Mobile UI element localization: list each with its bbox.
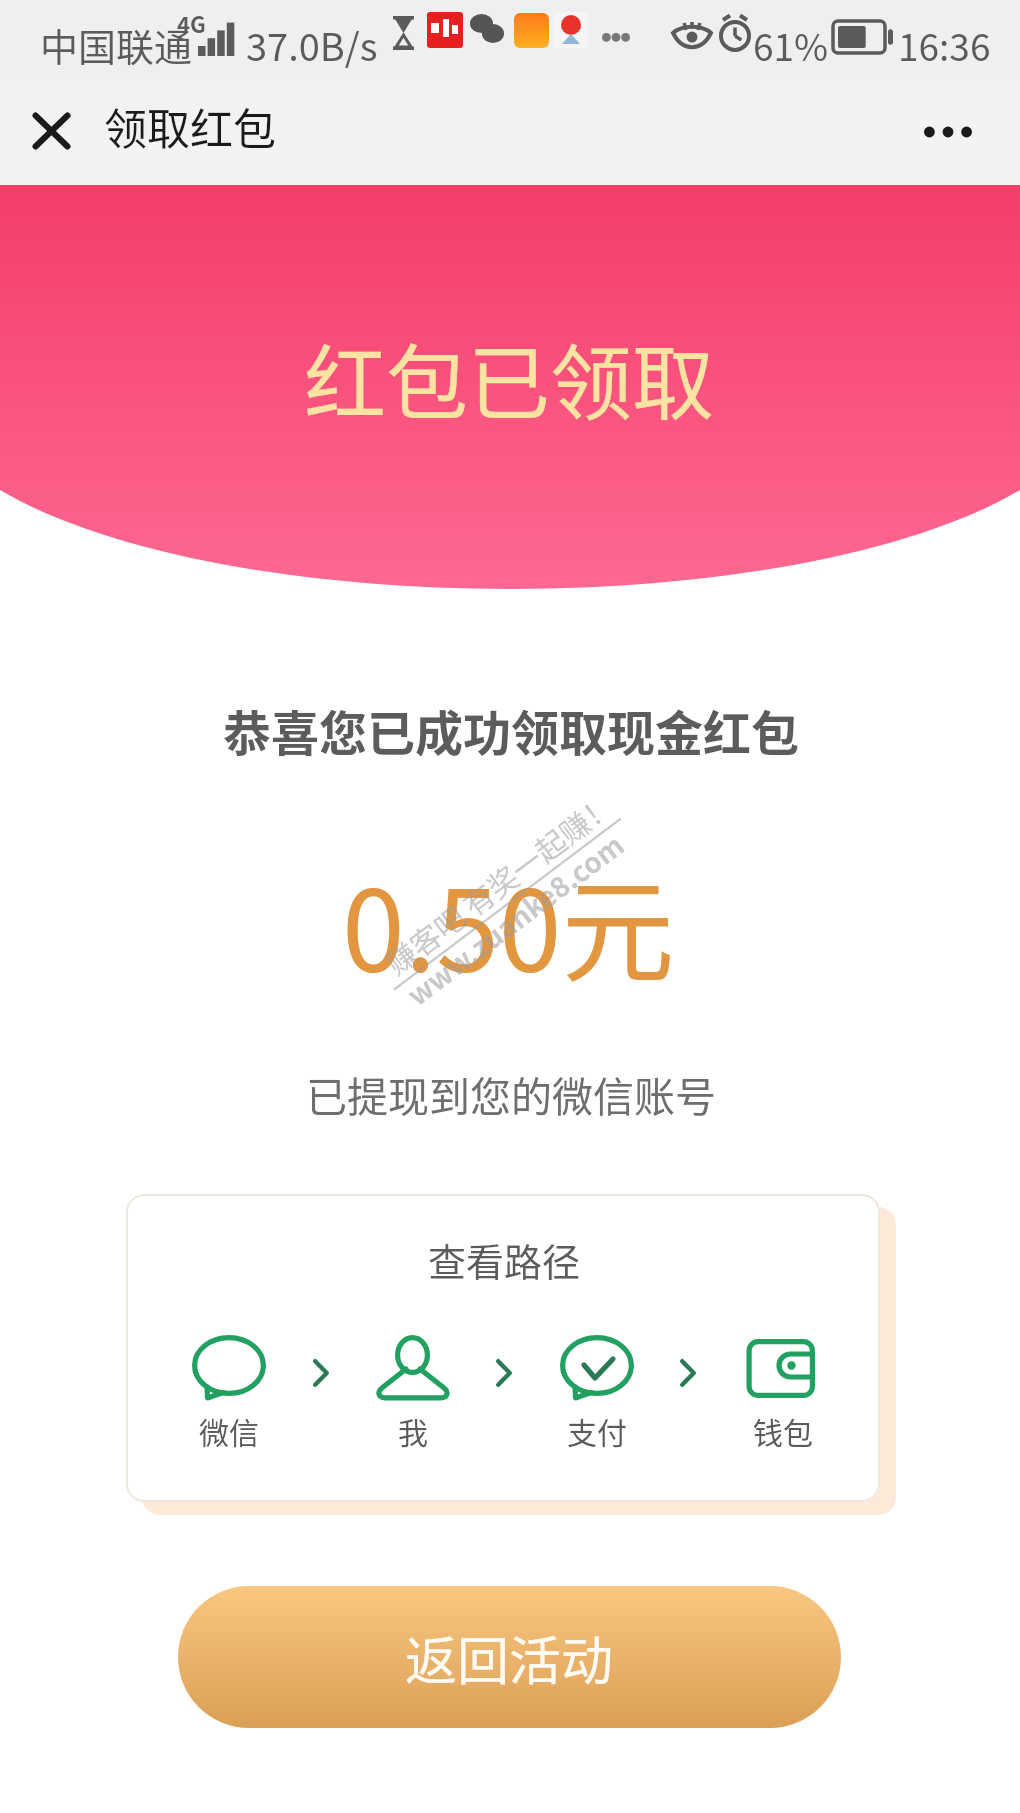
staticText: 支付 [540, 1409, 654, 1452]
button[interactable]: 返回活动 [178, 1586, 841, 1728]
staticText: 红包已领取 [304, 318, 715, 437]
staticText: 返回活动 [405, 1620, 614, 1695]
staticText: www.zuanke8.com [398, 824, 632, 1014]
staticText: 61% [753, 18, 829, 72]
button[interactable]: 我 [356, 1326, 470, 1451]
staticText: 已提现到您的微信账号 [306, 1064, 716, 1123]
staticText: 中国联通 [40, 17, 193, 72]
button[interactable]: 查看路径 [126, 1194, 880, 1502]
staticText: 领取红包 [104, 95, 276, 157]
staticText: 钱包 [726, 1409, 840, 1452]
button[interactable]: 微信 [172, 1326, 286, 1451]
staticText: 37.0B/s [246, 17, 378, 72]
staticText: 恭喜您已成功领取现金红包 [223, 695, 800, 765]
button[interactable]: 更多 [906, 96, 990, 168]
staticText: 4G [177, 7, 206, 39]
button[interactable]: 关闭 [14, 80, 89, 185]
staticText: 微信 [172, 1409, 286, 1452]
staticText: 我 [356, 1409, 470, 1452]
staticText: 0.50元 [342, 841, 675, 1005]
staticText: 查看路径 [428, 1232, 581, 1287]
button[interactable]: 钱包 [726, 1326, 840, 1451]
staticText: 16:36 [898, 18, 991, 72]
staticText: 赚客吧 有奖一起赚！ [375, 782, 623, 983]
button[interactable]: 支付 [540, 1326, 654, 1451]
